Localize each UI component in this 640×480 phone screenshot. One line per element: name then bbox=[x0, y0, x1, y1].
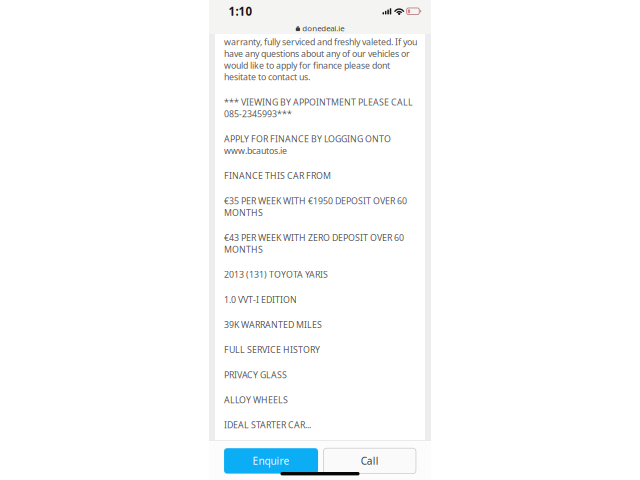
staticText: ALLOY WHEELS bbox=[224, 394, 288, 406]
staticText: would like to apply for finance please d… bbox=[224, 59, 390, 71]
staticText: 1.0 VVT-I EDITION bbox=[224, 293, 297, 305]
staticText: www.bcautos.ie bbox=[224, 145, 287, 157]
staticText: have any questions about any of our vehi… bbox=[224, 47, 410, 59]
staticText: APPLY FOR FINANCE BY LOGGING ONTO bbox=[224, 133, 391, 145]
staticText: 085-2345993*** bbox=[224, 108, 292, 120]
staticText: *** VIEWING BY APPOINTMENT PLEASE CALL bbox=[224, 96, 413, 108]
staticText: warranty, fully serviced and freshly val… bbox=[224, 36, 417, 48]
button[interactable]: Enquire bbox=[224, 448, 318, 474]
staticText: Enquire bbox=[253, 454, 290, 468]
staticText: 1:10 bbox=[228, 3, 252, 19]
staticText: donedeal.ie bbox=[302, 23, 344, 34]
staticText: Call bbox=[361, 454, 379, 468]
staticText: €43 PER WEEK WITH ZERO DEPOSIT OVER 60 bbox=[224, 232, 404, 244]
staticText: MONTHS bbox=[224, 206, 263, 218]
staticText: FINANCE THIS CAR FROM bbox=[224, 170, 331, 182]
button[interactable]: donedeal.ie bbox=[209, 22, 431, 34]
staticText: 39K WARRANTED MILES bbox=[224, 319, 322, 331]
staticText: hesitate to contact us. bbox=[224, 71, 310, 83]
staticText: MONTHS bbox=[224, 243, 263, 255]
button[interactable]: Call bbox=[323, 448, 416, 474]
staticText: FULL SERVICE HISTORY bbox=[224, 344, 320, 356]
staticText: PRIVACY GLASS bbox=[224, 369, 287, 381]
staticText: 2013 (131) TOYOTA YARIS bbox=[224, 268, 328, 280]
staticText: IDEAL STARTER CAR... bbox=[224, 419, 311, 431]
staticText: €35 PER WEEK WITH €1950 DEPOSIT OVER 60 bbox=[224, 195, 407, 207]
